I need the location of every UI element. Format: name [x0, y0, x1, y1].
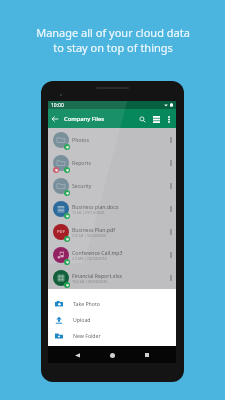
staticText: 10:00	[51, 102, 64, 109]
staticText: Business Plan.pdf	[72, 226, 115, 233]
button[interactable]: More options	[163, 113, 175, 125]
button[interactable]: Home	[106, 349, 118, 361]
staticText: Reports	[72, 159, 91, 166]
staticText: Upload	[73, 316, 91, 323]
button[interactable]: Conference Call.mp3	[48, 243, 176, 266]
staticText: PDF	[57, 229, 65, 235]
button[interactable]: Search	[135, 112, 149, 126]
staticText: 215 kB | 05/22/2020	[72, 233, 107, 238]
button[interactable]: Upload	[48, 311, 176, 327]
button[interactable]: Security	[48, 174, 176, 197]
staticText: 10.6 kB | 05/20/2020	[72, 279, 108, 284]
button[interactable]: Reports	[48, 151, 176, 174]
staticText: Security	[72, 182, 92, 189]
staticText: Financial Report.xlsx	[72, 272, 122, 279]
button[interactable]: PDF	[48, 220, 176, 243]
button[interactable]: New Folder	[48, 327, 176, 343]
button[interactable]: Back	[48, 112, 62, 126]
staticText: Business plan.docx	[72, 203, 119, 210]
staticText: Conference Call.mp3	[72, 249, 123, 256]
button[interactable]: Photos	[48, 128, 176, 151]
staticText: 13 kB | 09/16/2020	[72, 210, 105, 215]
button[interactable]: Back	[71, 349, 83, 361]
staticText: 2.3 MB | 02/24/2014	[72, 256, 107, 261]
button[interactable]: Recents	[141, 349, 153, 361]
staticText: Manage all of your cloud data to stay on…	[36, 25, 190, 55]
staticText: Photos	[72, 136, 89, 143]
button[interactable]: Financial Report.xlsx	[48, 266, 176, 289]
staticText: New Folder	[73, 332, 101, 339]
staticText: Company Files	[64, 115, 105, 123]
button[interactable]: Business plan.docx	[48, 197, 176, 220]
button[interactable]: Take Photo	[48, 295, 176, 311]
staticText: Take Photo	[73, 300, 100, 307]
button[interactable]: Change view	[149, 112, 163, 126]
